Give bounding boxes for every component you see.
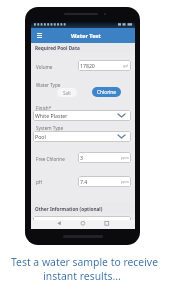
button[interactable]: Open navigation menu <box>35 31 44 40</box>
button[interactable]: Pool <box>33 131 131 142</box>
button[interactable]: Salt <box>57 88 77 97</box>
staticText: gal <box>123 63 129 68</box>
staticText: Water Test <box>71 32 101 40</box>
button[interactable]: 17820 <box>78 60 131 71</box>
button[interactable]: White Plaster <box>33 110 131 121</box>
button[interactable]: Back <box>57 220 72 229</box>
staticText: ppm <box>121 179 129 184</box>
staticText: instant results... <box>43 269 121 283</box>
button[interactable] <box>33 216 131 227</box>
staticText: Other Information (optional) <box>35 206 103 212</box>
staticText: Volume <box>36 64 53 70</box>
staticText: Water Type <box>36 82 61 88</box>
staticText: White Plaster <box>35 112 68 119</box>
button[interactable]: 3 <box>78 152 131 163</box>
staticText: Pool <box>35 133 46 140</box>
staticText: Salt <box>63 90 71 96</box>
staticText: Free Chlorine <box>36 156 65 162</box>
staticText: 7.4 <box>80 178 88 185</box>
staticText: Finish* <box>36 105 52 111</box>
staticText: Required Pool Data <box>35 45 80 51</box>
staticText: Test a water sample to receive <box>11 255 158 269</box>
staticText: System Type <box>36 125 64 131</box>
staticText: 3 <box>80 154 83 161</box>
staticText: 17820 <box>80 62 95 69</box>
staticText: ppm <box>121 155 129 160</box>
button[interactable]: 7.4 <box>78 176 131 187</box>
button[interactable]: Home <box>75 220 90 229</box>
staticText: pH <box>36 179 43 185</box>
staticText: Chlorine <box>97 89 117 96</box>
button[interactable]: Recent apps <box>94 220 109 229</box>
button[interactable]: Chlorine <box>92 87 121 97</box>
